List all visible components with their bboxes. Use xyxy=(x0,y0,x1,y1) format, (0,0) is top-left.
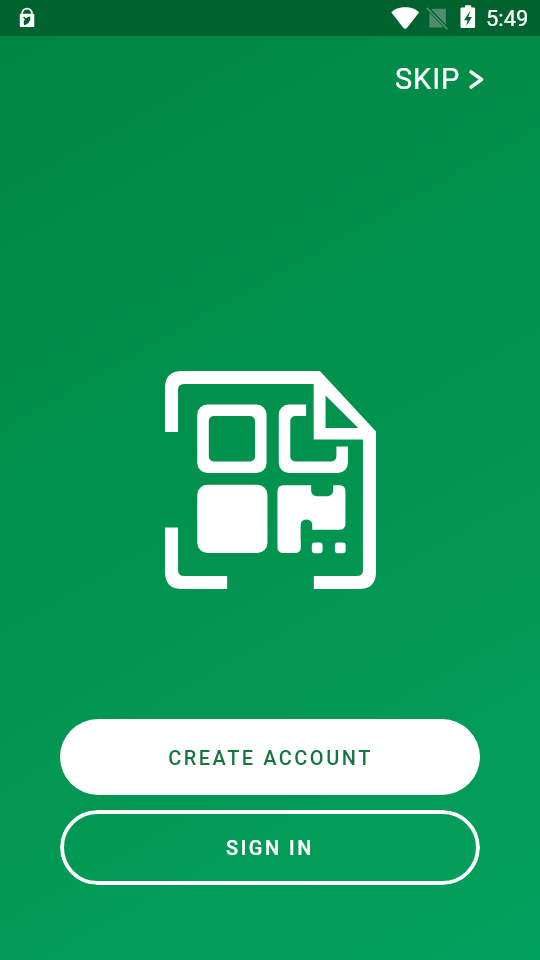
staticText: SKIP xyxy=(395,62,461,96)
button[interactable]: SIGN IN xyxy=(60,810,480,885)
staticText: CREATE ACCOUNT xyxy=(168,746,373,769)
staticText: SIGN IN xyxy=(226,836,314,859)
button[interactable]: Skip onboarding xyxy=(369,50,540,108)
staticText: 5:49 xyxy=(486,6,529,32)
button[interactable]: CREATE ACCOUNT xyxy=(60,719,480,795)
